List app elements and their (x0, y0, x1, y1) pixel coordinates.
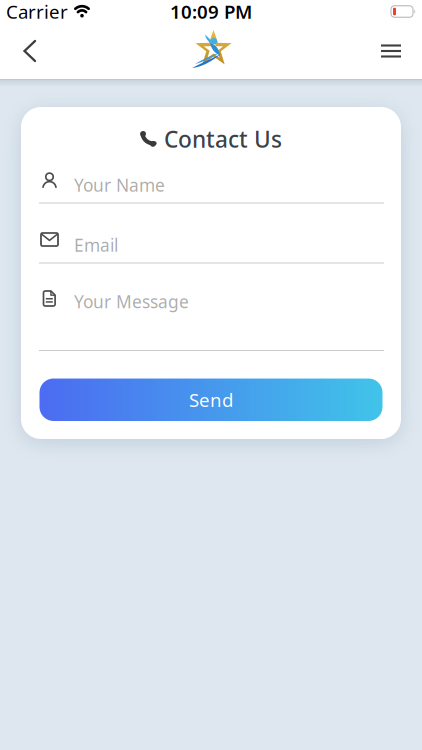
staticText: Contact Us (164, 124, 282, 154)
button[interactable]: Send (39, 378, 382, 421)
staticText: Your Message (74, 290, 189, 313)
staticText: Carrier (6, 0, 68, 24)
staticText: Email (74, 233, 118, 256)
button[interactable]: Your Name (21, 171, 401, 204)
staticText: Your Name (74, 173, 165, 196)
staticText: Send (189, 387, 233, 412)
button[interactable]: Your Message (21, 288, 401, 352)
button[interactable]: Back (8, 29, 52, 73)
staticText: 10:09 PM (170, 0, 252, 24)
button[interactable]: Email (21, 231, 401, 264)
button[interactable]: Menu (369, 29, 413, 73)
